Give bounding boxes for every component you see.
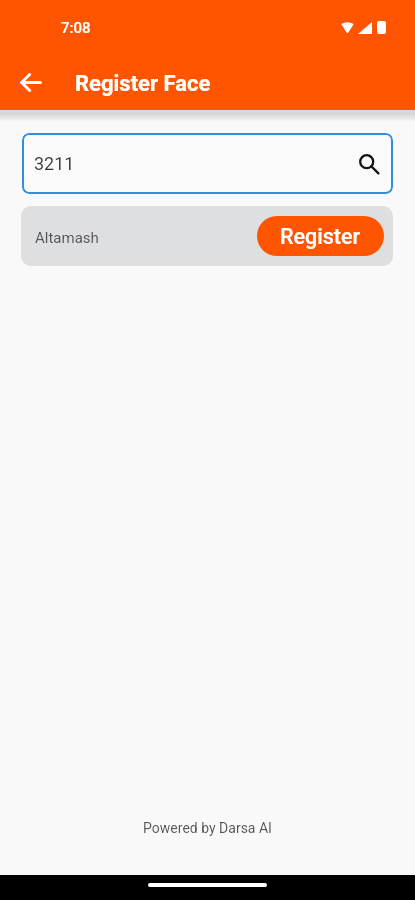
staticText: Register — [280, 224, 361, 249]
button[interactable]: 3211 — [22, 133, 393, 194]
staticText: Powered by Darsa AI — [143, 820, 272, 836]
staticText: 7:08 — [61, 19, 91, 37]
button[interactable]: Search — [354, 149, 384, 179]
staticText: Altamash — [35, 229, 99, 247]
staticText: Register Face — [75, 71, 211, 97]
staticText: 3211 — [34, 153, 75, 174]
button[interactable]: Back — [8, 60, 52, 104]
button[interactable]: Register — [257, 216, 384, 256]
button[interactable]: Altamash — [21, 206, 393, 266]
